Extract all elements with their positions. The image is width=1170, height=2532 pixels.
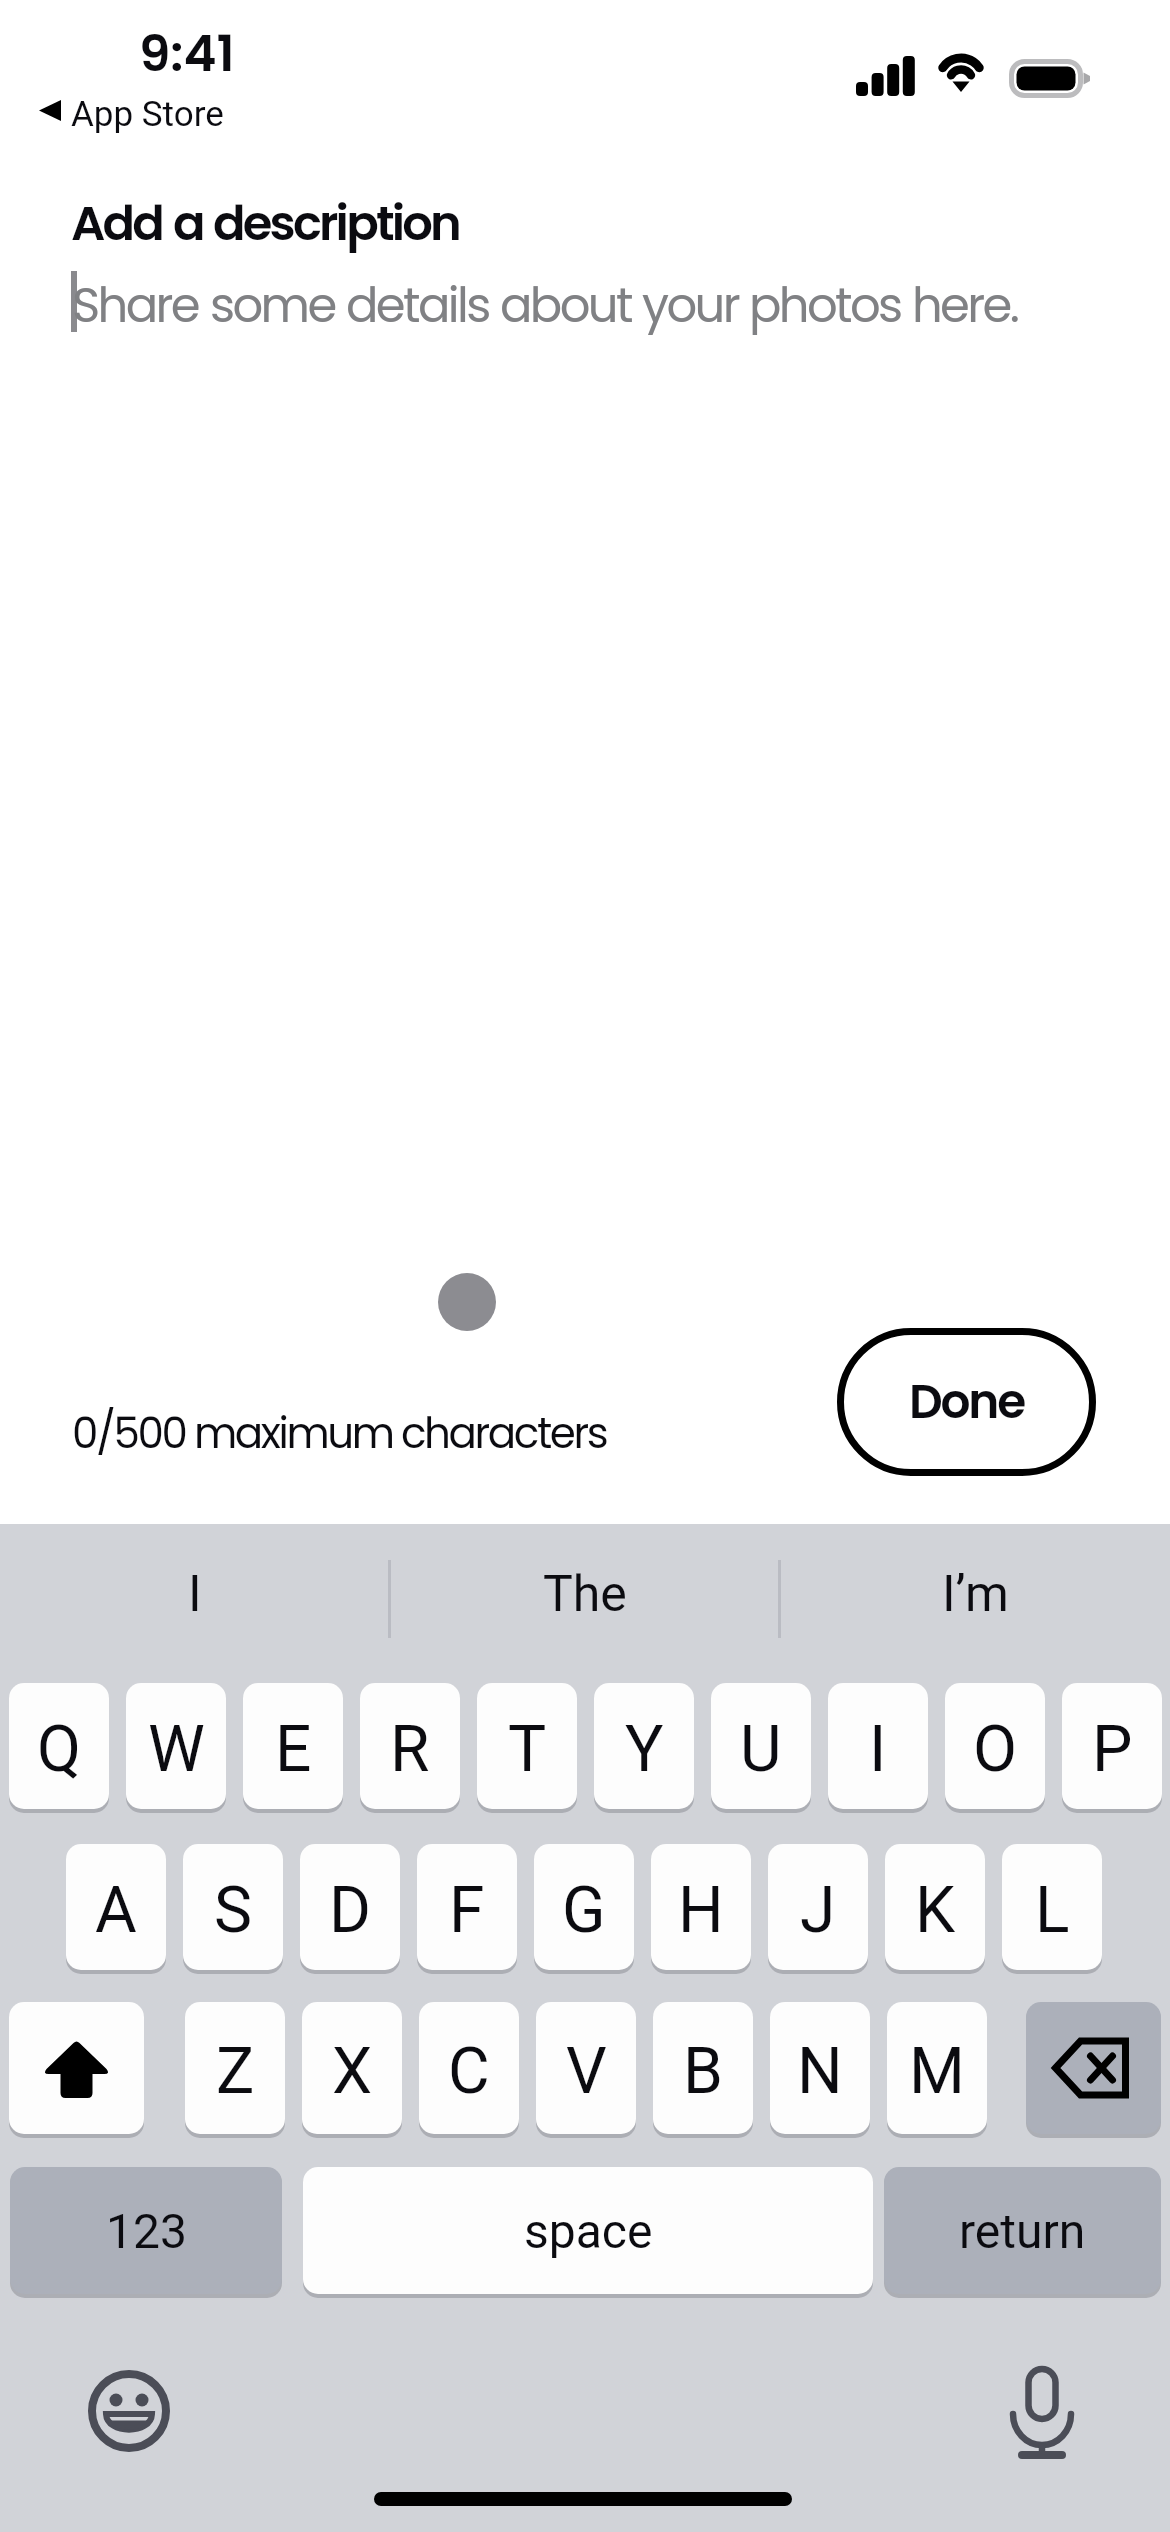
staticText: 123 [106, 2203, 187, 2259]
button[interactable]: L [1002, 1844, 1102, 1970]
button[interactable]: J [768, 1844, 868, 1970]
staticText: App Store [71, 94, 224, 135]
button[interactable]: C [419, 2002, 519, 2134]
staticText: some [210, 272, 335, 339]
button[interactable]: I [828, 1683, 928, 1809]
button[interactable]: Z [185, 2002, 285, 2134]
button[interactable]: Emoji keyboard [88, 2370, 170, 2452]
button[interactable]: space [303, 2167, 873, 2294]
staticText: here. [912, 272, 1018, 339]
button[interactable]: Q [9, 1683, 109, 1809]
button[interactable]: K [885, 1844, 985, 1970]
staticText: R [390, 1712, 430, 1787]
button[interactable]: S [183, 1844, 283, 1970]
staticText: D [329, 1873, 371, 1948]
button[interactable]: The [390, 1524, 780, 1664]
staticText: Z [216, 2034, 255, 2109]
button[interactable]: R [360, 1683, 460, 1809]
button[interactable]: T [477, 1683, 577, 1809]
button[interactable]: H [651, 1844, 751, 1970]
button[interactable]: Dictation [1011, 2364, 1073, 2464]
button[interactable]: 123 [10, 2167, 282, 2294]
staticText: Y [625, 1712, 664, 1787]
staticText: Done [909, 1369, 1024, 1435]
button[interactable]: X [302, 2002, 402, 2134]
button[interactable]: U [711, 1683, 811, 1809]
staticText: N [797, 2034, 843, 2109]
staticText: A [95, 1873, 137, 1948]
staticText: K [915, 1873, 956, 1948]
button[interactable]: F [417, 1844, 517, 1970]
button[interactable]: I [0, 1524, 390, 1664]
staticText: X [332, 2034, 373, 2109]
staticText: S [214, 1873, 252, 1948]
staticText: V [566, 2034, 607, 2109]
staticText: Q [37, 1712, 82, 1787]
button[interactable]: D [300, 1844, 400, 1970]
button[interactable]: Shift [9, 2002, 144, 2134]
staticText: photos [749, 272, 901, 339]
button[interactable]: Description text field [71, 265, 1099, 1265]
staticText: M [909, 2034, 965, 2109]
staticText: F [449, 1873, 485, 1948]
button[interactable]: G [534, 1844, 634, 1970]
button[interactable]: W [126, 1683, 226, 1809]
staticText: O [973, 1712, 1018, 1787]
staticText: 9:41 [139, 19, 235, 89]
button[interactable]: N [770, 2002, 870, 2134]
button[interactable]: E [243, 1683, 343, 1809]
staticText: B [683, 2034, 723, 2109]
staticText: J [800, 1873, 836, 1948]
button[interactable]: M [887, 2002, 987, 2134]
staticText: E [275, 1712, 312, 1787]
button[interactable]: A [66, 1844, 166, 1970]
staticText: description [213, 190, 460, 257]
button[interactable]: B [653, 2002, 753, 2134]
button[interactable]: I’m [780, 1524, 1170, 1664]
staticText: I’m [942, 1565, 1009, 1624]
staticText: I [869, 1712, 887, 1787]
staticText: I [188, 1565, 202, 1624]
button[interactable]: V [536, 2002, 636, 2134]
staticText: G [562, 1873, 606, 1948]
staticText: H [678, 1873, 724, 1948]
button[interactable]: App Store [39, 94, 224, 135]
staticText: details [346, 272, 489, 339]
staticText: T [508, 1712, 547, 1787]
staticText: about [500, 272, 631, 339]
button[interactable]: Done [837, 1328, 1096, 1476]
button[interactable]: P [1062, 1683, 1162, 1809]
staticText: U [740, 1712, 782, 1787]
staticText: return [959, 2203, 1086, 2259]
staticText: C [448, 2034, 490, 2109]
staticText: space [524, 2203, 653, 2259]
staticText: Add [71, 190, 163, 257]
staticText: W [148, 1712, 205, 1787]
staticText: a [173, 190, 203, 257]
button[interactable]: O [945, 1683, 1045, 1809]
staticText: The [543, 1565, 627, 1624]
staticText: your [642, 272, 738, 339]
button[interactable]: return [884, 2167, 1161, 2294]
staticText: Share [72, 272, 199, 339]
staticText: 0/500 [72, 1404, 186, 1463]
button[interactable]: Y [594, 1683, 694, 1809]
button[interactable]: Backspace [1026, 2002, 1161, 2134]
staticText: characters [401, 1404, 607, 1463]
staticText: L [1035, 1873, 1070, 1948]
staticText: maximum [194, 1404, 393, 1463]
staticText: P [1092, 1712, 1133, 1787]
